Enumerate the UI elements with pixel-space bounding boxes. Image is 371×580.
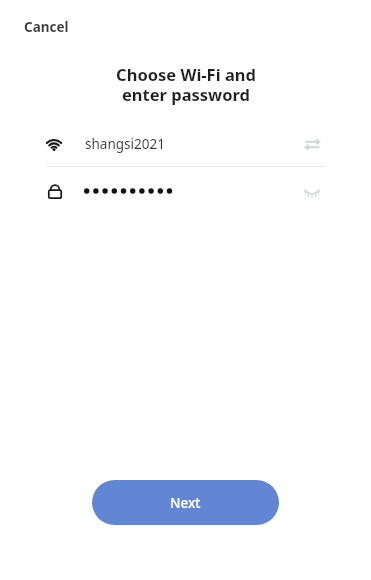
button[interactable]: Show password <box>299 178 325 204</box>
button[interactable]: Next <box>92 480 279 525</box>
button[interactable]: shangsi2021 <box>0 122 371 166</box>
button[interactable]: Switch network <box>299 131 325 157</box>
staticText: Choose Wi-Fi and enter password <box>116 63 256 106</box>
staticText: Next <box>170 494 201 512</box>
staticText: shangsi2021 <box>85 135 165 153</box>
staticText: Cancel <box>24 18 69 36</box>
button[interactable]: Cancel <box>16 14 77 40</box>
button[interactable]: Show password <box>0 167 371 215</box>
